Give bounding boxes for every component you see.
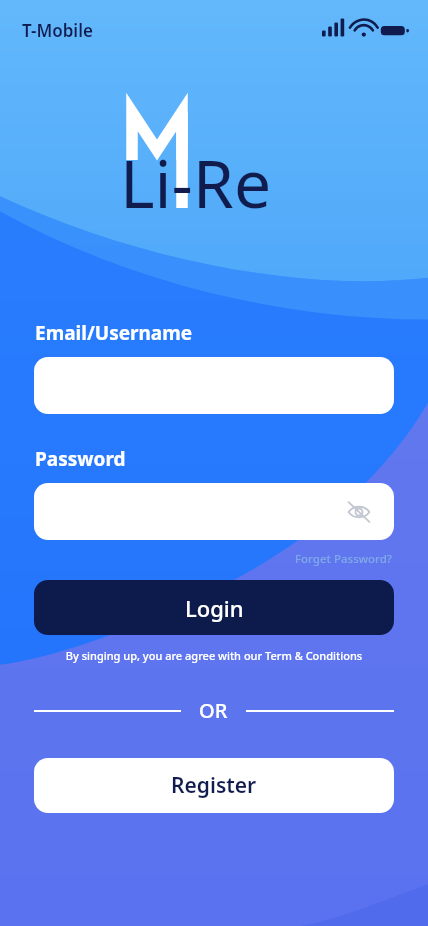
button[interactable]: Forget Password?: [293, 549, 394, 569]
button[interactable]: Show password: [342, 495, 376, 529]
button[interactable]: [34, 357, 394, 414]
button[interactable]: Login: [34, 580, 394, 635]
staticText: OR: [199, 697, 228, 724]
staticText: Register: [171, 771, 257, 800]
staticText: T-Mobile: [22, 19, 93, 42]
staticText: Li-Re: [120, 137, 272, 227]
button[interactable]: Show password: [34, 483, 394, 540]
staticText: Forget Password?: [295, 551, 392, 567]
staticText: By singing up, you are agree with our Te…: [34, 648, 394, 663]
staticText: Login: [185, 593, 244, 623]
staticText: Password: [35, 446, 126, 472]
button[interactable]: Register: [34, 758, 394, 813]
staticText: Email/Username: [35, 320, 193, 346]
